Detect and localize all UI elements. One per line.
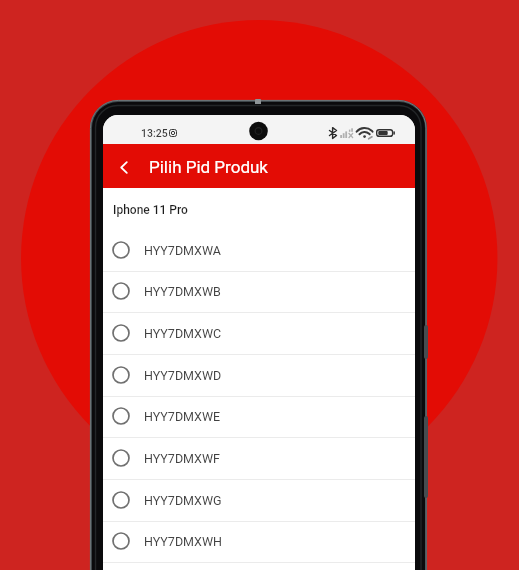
staticText: HYY7DMXWB [144,284,221,299]
staticText: HYY7DMXWA [144,243,221,258]
button[interactable]: HYY7DMXWB [103,271,415,313]
button[interactable]: HYY7DMXWF [103,438,415,480]
button[interactable]: Back [103,144,145,188]
staticText: HYY7DMXWH [144,534,222,549]
staticText: 13:25 [141,127,168,139]
staticText: Pilih Pid Produk [149,157,268,177]
staticText: HYY7DMXWF [144,451,220,466]
button[interactable]: HYY7DMXWC [103,313,415,355]
staticText: HYY7DMXWD [144,368,222,383]
staticText: HYY7DMXWC [144,326,222,341]
staticText: HYY7DMXWG [144,493,222,508]
staticText: HYY7DMXWE [144,409,221,424]
button[interactable]: HYY7DMXWD [103,355,415,397]
button[interactable]: HYY7DMXWH [103,521,415,563]
button[interactable]: HYY7DMXWE [103,396,415,438]
button[interactable]: HYY7DMXWG [103,480,415,522]
button[interactable]: HYY7DMXWA [103,230,415,272]
staticText: Iphone 11 Pro [113,203,188,217]
